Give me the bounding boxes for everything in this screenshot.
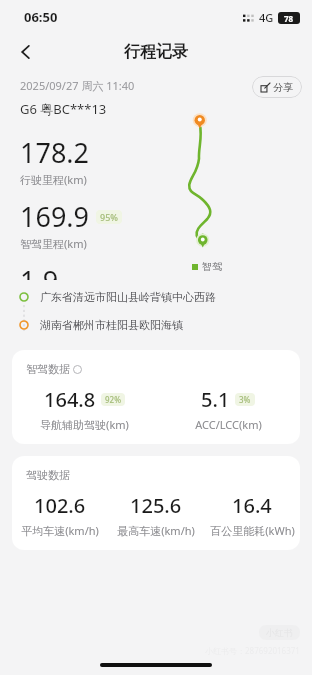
button[interactable]: 分享 — [252, 76, 302, 98]
staticText: 湖南省郴州市桂阳县欧阳海镇 — [40, 318, 183, 332]
staticText: 导航辅助驾驶(km) — [40, 417, 129, 432]
staticText: 行驶里程(km) — [20, 172, 87, 187]
staticText: 行程记录 — [124, 42, 188, 62]
staticText: 智驾 — [202, 260, 222, 273]
staticText: ACC/LCC(km) — [195, 417, 262, 432]
staticText: 智驾数据 — [26, 362, 70, 376]
staticText: 125.6 — [130, 492, 182, 519]
staticText: 百公里能耗(kWh) — [210, 523, 295, 538]
staticText: 92% — [105, 394, 121, 405]
staticText: 分享 — [273, 81, 293, 94]
staticText: G6 粤BC***13 — [20, 100, 107, 118]
button[interactable]: 驾驶数据 — [12, 456, 300, 550]
staticText: 2025/09/27 周六 11:40 — [20, 78, 135, 93]
staticText: 最高车速(km/h) — [117, 523, 195, 538]
staticText: 平均车速(km/h) — [21, 523, 99, 538]
staticText: 驾驶数据 — [26, 468, 70, 482]
button[interactable]: 智驾数据 — [12, 350, 300, 444]
staticText: 4G — [259, 10, 274, 25]
staticText: 06:50 — [24, 8, 58, 26]
staticText: 16.4 — [232, 492, 272, 519]
staticText: 178.2 — [20, 134, 90, 171]
staticText: 智驾里程(km) — [20, 236, 87, 251]
staticText: 5.1 — [201, 386, 230, 413]
staticText: 102.6 — [34, 492, 86, 519]
staticText: 1.9 — [20, 262, 59, 280]
staticText: 95% — [100, 211, 118, 223]
staticText: 3% — [239, 394, 251, 405]
staticText: 广东省清远市阳山县岭背镇中心西路 — [40, 290, 216, 304]
staticText: 169.9 — [20, 198, 90, 235]
button[interactable]: Back — [8, 34, 44, 70]
staticText: 78 — [284, 13, 294, 24]
staticText: 164.8 — [44, 386, 96, 413]
